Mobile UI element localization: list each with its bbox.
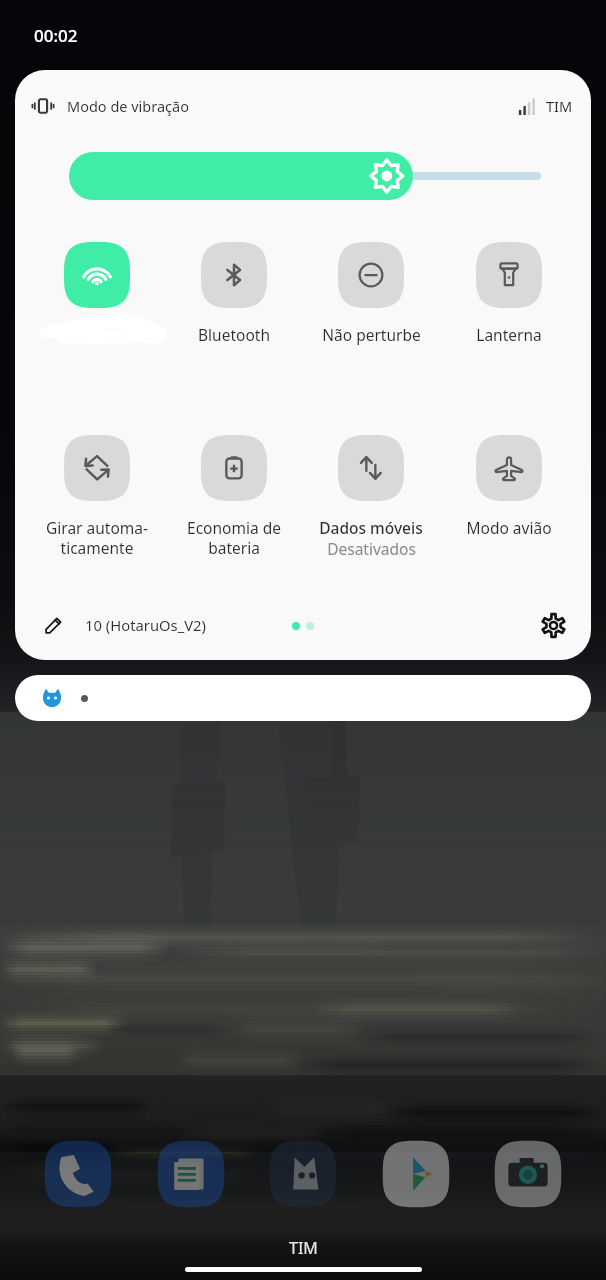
staticText: Bluetooth — [198, 324, 270, 345]
staticText: Modo avião — [466, 517, 552, 538]
button[interactable]: Play Store — [381, 1139, 451, 1209]
staticText: Não perturbe — [322, 324, 421, 345]
button[interactable]: Modo avião — [440, 435, 578, 538]
staticText: Lanterna — [476, 324, 542, 345]
button[interactable]: Bluetooth — [165, 242, 302, 345]
button[interactable]: Wi-Fi — [28, 242, 165, 324]
button[interactable]: Configurações — [535, 607, 571, 643]
button[interactable]: Brilho — [69, 152, 537, 200]
button[interactable]: Notificação — [15, 675, 591, 721]
staticText: Economia de bateria — [187, 517, 281, 558]
staticText: 00:02 — [34, 24, 78, 47]
button[interactable]: Mensagens — [156, 1139, 226, 1209]
button[interactable]: Lanterna — [440, 242, 578, 345]
button[interactable]: Câmera — [493, 1139, 563, 1209]
staticText: Girar automa- ticamente — [46, 517, 148, 558]
button[interactable]: Editar — [35, 607, 71, 643]
staticText: Desativados — [327, 538, 416, 559]
staticText: TIM — [546, 96, 573, 116]
button[interactable]: Economia de bateria — [165, 435, 302, 558]
button[interactable]: Dados móveis — [302, 435, 440, 559]
button[interactable]: Não perturbe — [302, 242, 440, 345]
staticText: 10 (HotaruOs_V2) — [85, 615, 207, 635]
button[interactable]: Telefone — [43, 1139, 113, 1209]
staticText: Modo de vibração — [67, 96, 189, 116]
button[interactable]: Contatos — [268, 1139, 338, 1209]
staticText: Dados móveis — [319, 517, 423, 538]
button[interactable]: Girar automa- ticamente — [28, 435, 165, 558]
staticText: TIM — [289, 1237, 318, 1259]
